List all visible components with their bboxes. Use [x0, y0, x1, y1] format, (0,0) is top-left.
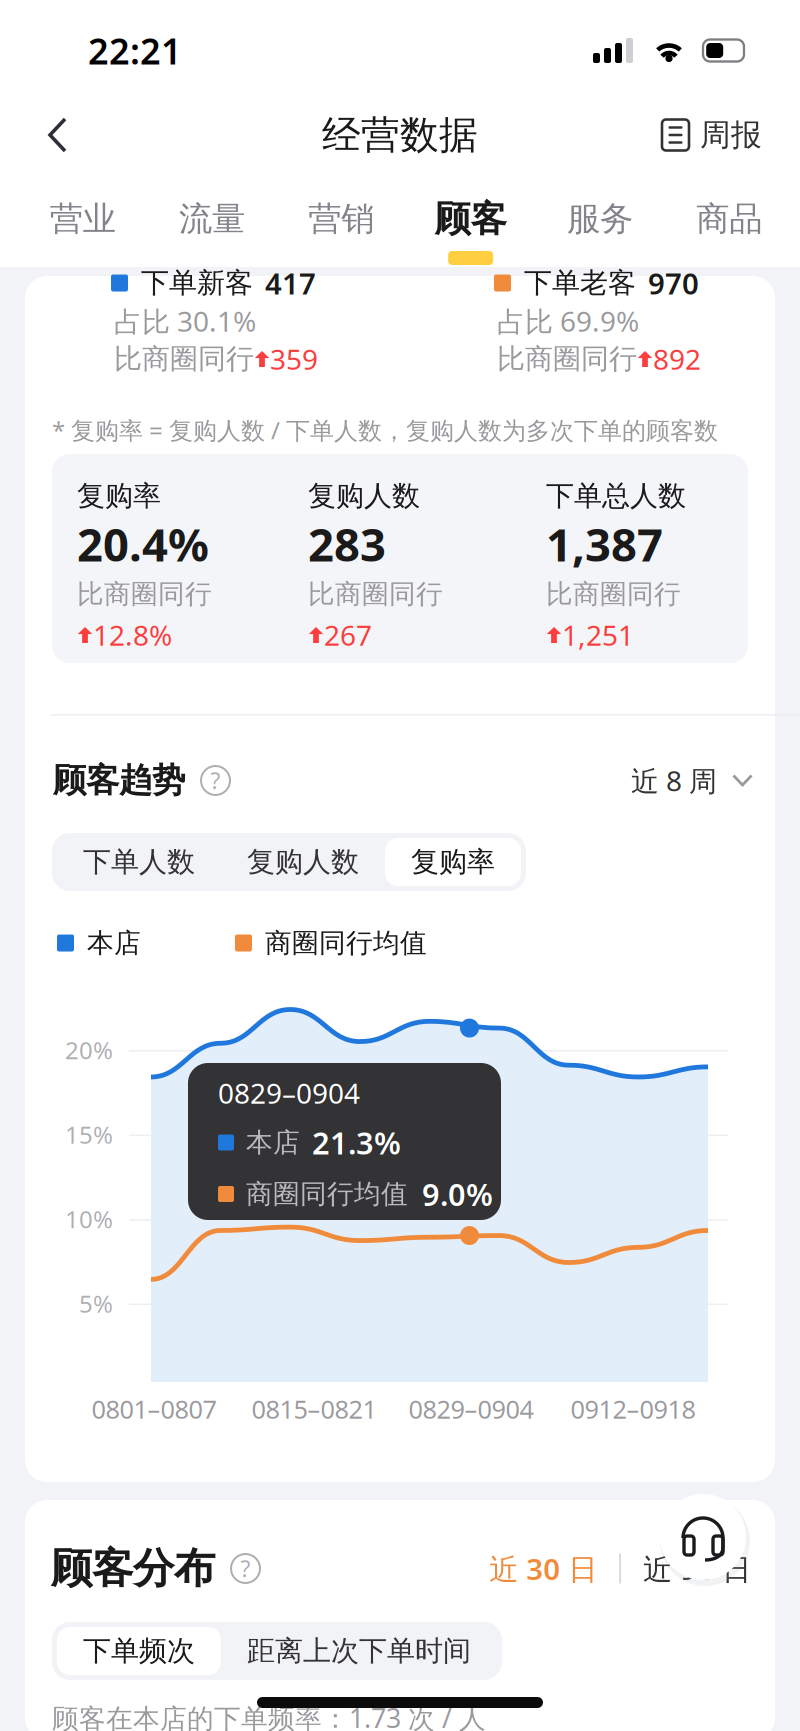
- staticText: 0829–0904: [218, 1074, 360, 1112]
- button[interactable]: 周报: [661, 98, 762, 172]
- staticText: 417: [265, 263, 316, 302]
- staticText: 比商圈同行: [114, 342, 254, 376]
- staticText: 比商圈同行: [497, 342, 637, 376]
- button[interactable]: 营业: [18, 169, 147, 262]
- button[interactable]: 距离上次下单时间: [221, 1627, 497, 1675]
- button[interactable]: 近 90 日: [643, 1549, 751, 1588]
- staticText: ?: [210, 765, 220, 795]
- staticText: 892: [653, 340, 701, 378]
- button[interactable]: 近 8 周: [631, 762, 753, 799]
- staticText: 22:21: [88, 27, 182, 74]
- button[interactable]: 返回: [46, 98, 112, 172]
- staticText: 0815–0821: [251, 1392, 376, 1426]
- button[interactable]: 营销: [277, 169, 406, 262]
- staticText: 21.3%: [312, 1122, 401, 1163]
- staticText: 1,251: [562, 616, 634, 654]
- button[interactable]: 商品: [665, 169, 794, 262]
- staticText: 15%: [65, 1119, 113, 1150]
- staticText: 顾客: [435, 197, 507, 241]
- staticText: 商品: [696, 198, 762, 239]
- staticText: 970: [648, 263, 699, 302]
- staticText: 下单老客: [524, 266, 636, 300]
- staticText: ?: [240, 1553, 250, 1583]
- staticText: 营销: [308, 198, 374, 239]
- button[interactable]: 服务: [535, 169, 665, 262]
- staticText: 流量: [179, 198, 245, 239]
- staticText: 营业: [50, 198, 116, 239]
- button[interactable]: 复购率: [385, 838, 521, 886]
- staticText: 商圈同行均值: [246, 1178, 408, 1210]
- button[interactable]: 客服: [660, 1494, 750, 1586]
- staticText: 下单总人数: [546, 479, 686, 513]
- staticText: 下单频次: [83, 1634, 195, 1668]
- staticText: 本店: [87, 927, 141, 959]
- staticText: * 复购率 = 复购人数 / 下单人数，复购人数为多次下单的顾客数: [52, 414, 718, 446]
- staticText: 比商圈同行: [546, 578, 681, 610]
- staticText: 0912–0918: [570, 1392, 695, 1426]
- staticText: 1,387: [546, 514, 663, 574]
- button[interactable]: 复购人数: [221, 838, 385, 886]
- staticText: 5%: [79, 1288, 113, 1319]
- staticText: 20%: [65, 1034, 113, 1066]
- staticText: 商圈同行均值: [265, 927, 427, 959]
- button[interactable]: 近 30 日: [489, 1549, 597, 1588]
- staticText: 复购率: [77, 479, 161, 513]
- staticText: 复购人数: [247, 845, 359, 879]
- staticText: 9.0%: [422, 1174, 493, 1214]
- staticText: 267: [324, 616, 372, 654]
- staticText: 顾客趋势: [53, 760, 185, 801]
- staticText: 比商圈同行: [308, 578, 443, 610]
- button[interactable]: 下单人数: [57, 838, 221, 886]
- staticText: 占比 30.1%: [114, 302, 256, 340]
- staticText: 近 30 日: [489, 1549, 597, 1588]
- staticText: 12.8%: [93, 616, 172, 654]
- staticText: 比商圈同行: [77, 578, 212, 610]
- staticText: 10%: [65, 1203, 113, 1235]
- button[interactable]: 流量: [147, 169, 277, 262]
- button[interactable]: 顾客: [406, 169, 535, 262]
- staticText: 顾客在本店的下单频率：1.73 次 / 人: [52, 1700, 486, 1731]
- staticText: 359: [270, 340, 318, 378]
- staticText: 本店: [246, 1126, 300, 1159]
- staticText: 距离上次下单时间: [247, 1634, 471, 1668]
- staticText: 0801–0807: [91, 1392, 216, 1426]
- staticText: 近 90 日: [643, 1549, 751, 1588]
- staticText: 283: [308, 514, 386, 574]
- staticText: 占比 69.9%: [497, 302, 639, 340]
- staticText: 近 8 周: [631, 762, 717, 799]
- staticText: 经营数据: [322, 111, 478, 159]
- staticText: 下单新客: [141, 266, 253, 300]
- staticText: 复购人数: [308, 479, 420, 513]
- staticText: 复购率: [411, 845, 495, 879]
- staticText: 0829–0904: [408, 1392, 533, 1426]
- staticText: 20.4%: [77, 514, 209, 574]
- staticText: 顾客分布: [51, 1543, 215, 1594]
- staticText: 下单人数: [83, 845, 195, 879]
- button[interactable]: 下单频次: [57, 1627, 221, 1675]
- staticText: 服务: [567, 198, 633, 239]
- staticText: 周报: [700, 116, 762, 154]
